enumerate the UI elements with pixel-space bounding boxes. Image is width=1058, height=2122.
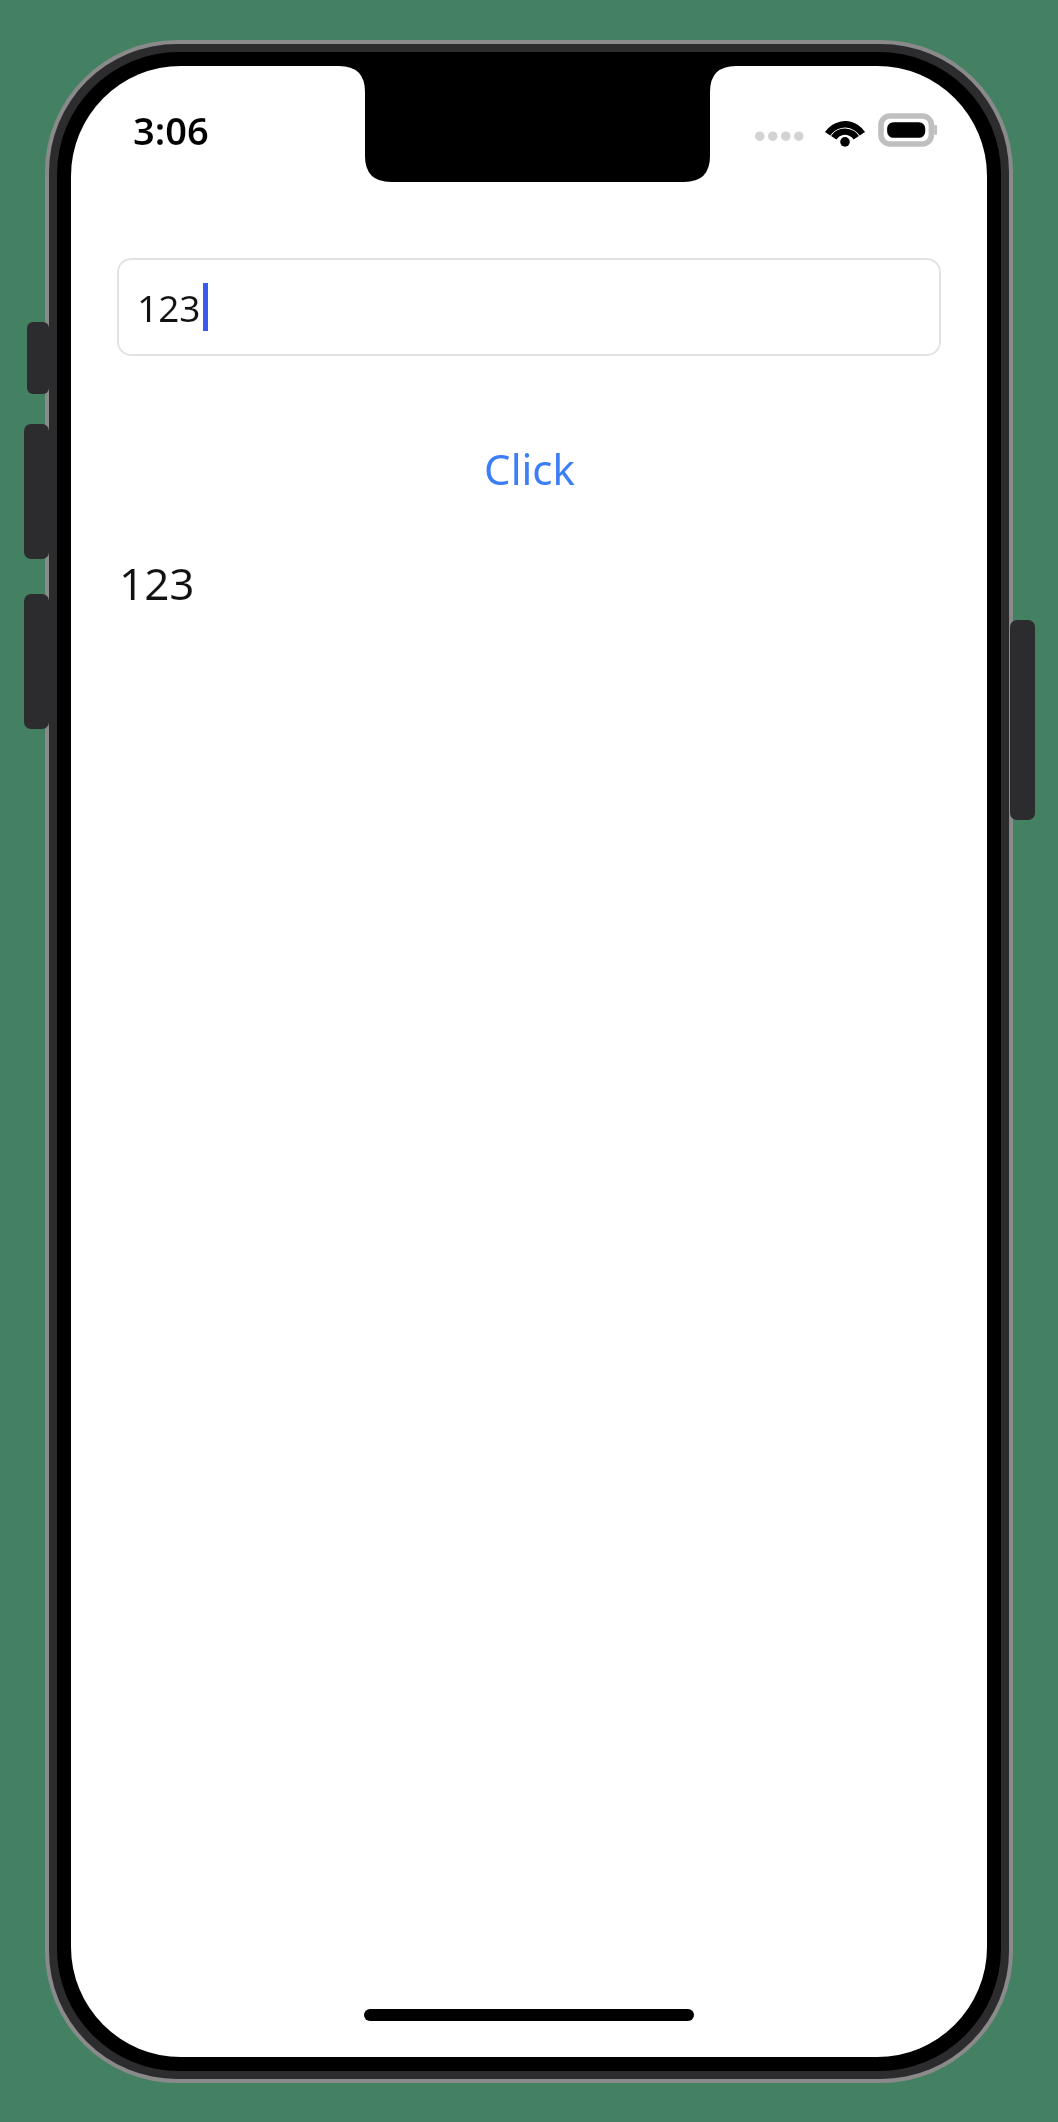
staticText: 123 xyxy=(119,553,195,613)
other: Volume down xyxy=(24,594,49,729)
other: Volume up xyxy=(24,424,49,559)
button[interactable]: 123 xyxy=(117,258,941,356)
staticText: Click xyxy=(484,440,575,497)
staticText: 3:06 xyxy=(133,104,209,156)
other: Side button xyxy=(1010,620,1035,820)
staticText: 123 xyxy=(137,282,201,332)
button[interactable]: Click xyxy=(468,434,591,503)
other: Ring silent switch xyxy=(27,322,49,394)
